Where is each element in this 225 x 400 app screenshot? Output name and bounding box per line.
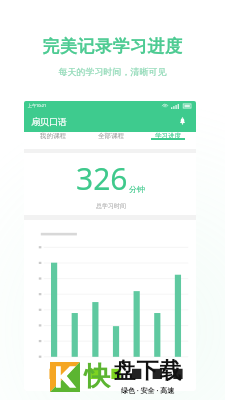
staticText: 每天的学习时间，清晰可见 bbox=[0, 66, 225, 77]
staticText: 上午10:21 bbox=[28, 103, 47, 108]
button[interactable]: 我的课程 bbox=[24, 132, 82, 140]
staticText: 学习进度 bbox=[155, 132, 181, 140]
staticText: 完美记录学习进度 bbox=[0, 36, 225, 57]
button[interactable]: 学习进度 bbox=[139, 132, 196, 140]
staticText: 326 bbox=[76, 158, 128, 199]
staticText: 盘下载 bbox=[113, 357, 182, 385]
staticText: 快 bbox=[84, 360, 110, 393]
staticText: 全部课程 bbox=[98, 132, 124, 140]
button[interactable]: 全部课程 bbox=[82, 132, 139, 140]
staticText: 分钟 bbox=[129, 184, 145, 194]
button[interactable]: 快盘下载 logo bbox=[50, 362, 80, 392]
staticText: 绿色 · 安全 · 高速 bbox=[121, 386, 175, 396]
button[interactable]: Notifications bbox=[175, 114, 189, 128]
staticText: 我的课程 bbox=[40, 132, 66, 140]
staticText: 扇贝口语 bbox=[31, 116, 67, 127]
staticText: 总学习时间 bbox=[96, 202, 126, 210]
